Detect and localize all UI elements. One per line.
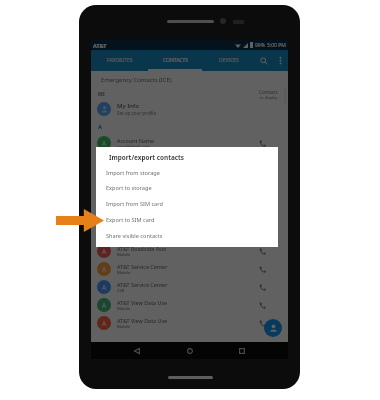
button[interactable]: A — [97, 170, 268, 188]
staticText: AT&T — [93, 42, 107, 49]
button[interactable]: A — [97, 224, 268, 242]
staticText: AT&T View Data Use — [117, 299, 168, 306]
button[interactable]: Import from storage — [96, 165, 278, 181]
staticText: AT&T Service Center — [117, 281, 168, 288]
button[interactable]: A — [97, 242, 268, 260]
button[interactable]: A — [97, 278, 268, 296]
staticText: Export to SIM card — [106, 216, 155, 224]
staticText: AT&T Address Book — [117, 155, 166, 162]
staticText: Import from SIM card — [106, 200, 163, 208]
button[interactable]: FAVORITES — [91, 50, 148, 71]
staticText: A — [102, 301, 107, 310]
button[interactable]: Export to storage — [96, 180, 278, 196]
staticText: user@gmail.com — [117, 144, 151, 150]
staticText: DEVICES — [219, 57, 239, 64]
staticText: 5:00 PM — [267, 42, 286, 49]
staticText: Export to storage — [106, 184, 152, 192]
button[interactable]: Back — [130, 344, 144, 358]
staticText: AT&T Bill & Account — [117, 173, 166, 180]
button[interactable]: Call AT&T Roadside Asst — [257, 246, 268, 257]
button[interactable]: A — [97, 188, 268, 206]
staticText: AT&T Service Center — [117, 263, 168, 270]
staticText: Set up your profile — [117, 110, 157, 116]
staticText: A — [98, 123, 102, 130]
button[interactable]: Import from SIM card — [96, 196, 278, 212]
staticText: 228 — [117, 288, 125, 294]
staticText: to display — [260, 95, 278, 100]
staticText: FAVORITES — [107, 57, 133, 64]
button[interactable]: DEVICES — [202, 50, 255, 71]
staticText: A — [102, 229, 107, 238]
button[interactable]: Call Account Name — [257, 138, 268, 149]
button[interactable]: A — [97, 152, 268, 170]
button[interactable]: CONTACTS — [148, 50, 202, 71]
staticText: 99% — [255, 42, 265, 49]
staticText: 611 — [117, 198, 125, 204]
staticText: A — [102, 283, 107, 292]
staticText: Emergency Contacts (ICE) — [101, 76, 172, 84]
staticText: A — [102, 265, 107, 274]
staticText: 411 — [117, 216, 125, 222]
staticText: A — [102, 319, 107, 328]
button[interactable]: Emergency Contacts (ICE) — [91, 71, 288, 88]
button[interactable]: A — [97, 134, 268, 152]
staticText: A — [102, 139, 107, 148]
button[interactable]: Export to SIM card — [96, 212, 278, 228]
staticText: CONTACTS — [163, 57, 188, 64]
staticText: Import/export contacts — [109, 153, 185, 162]
button[interactable]: A — [97, 314, 268, 332]
staticText: ME — [98, 91, 105, 97]
staticText: Mobile — [117, 252, 131, 258]
button[interactable]: Call AT&T Service Center — [257, 282, 268, 293]
button[interactable]: Call AT&T Service Center — [257, 264, 268, 275]
staticText: Contacts — [259, 89, 278, 95]
staticText: Mobile — [117, 324, 131, 330]
button[interactable]: My Info — [97, 100, 282, 118]
button[interactable]: Share visible contacts — [96, 228, 278, 244]
staticText: Import from storage — [106, 169, 160, 177]
button[interactable]: More options — [273, 50, 288, 71]
button[interactable]: Add contact — [264, 319, 282, 337]
button[interactable]: Call AT&T View Data Use — [257, 318, 268, 329]
staticText: Account Name — [117, 137, 155, 144]
button[interactable]: Call AT&T View Data Use — [257, 300, 268, 311]
staticText: AT&T View Data Use — [117, 317, 168, 324]
staticText: Mobile — [117, 306, 131, 312]
button[interactable]: A — [97, 296, 268, 314]
button[interactable]: A — [97, 206, 268, 224]
staticText: Share visible contacts — [106, 232, 163, 240]
staticText: A — [102, 247, 107, 256]
staticText: Mobile — [117, 270, 131, 276]
button[interactable]: Search — [255, 50, 273, 71]
staticText: AT&T Roadside Asst — [117, 245, 167, 252]
button[interactable]: A — [97, 260, 268, 278]
staticText: A — [102, 211, 107, 220]
button[interactable]: Home — [183, 344, 197, 358]
button[interactable]: Recents — [235, 344, 249, 358]
staticText: Mobile — [117, 234, 131, 240]
staticText: My Info — [117, 102, 139, 110]
